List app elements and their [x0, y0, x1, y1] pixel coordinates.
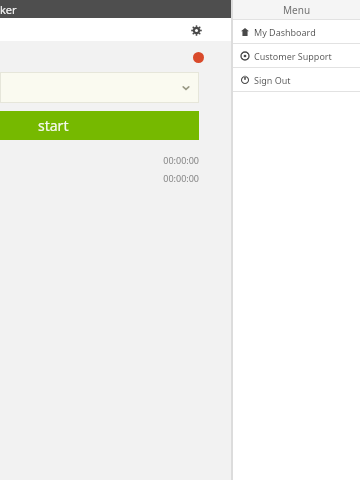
staticText: ker [0, 2, 17, 17]
staticText: Menu [283, 3, 311, 17]
button[interactable]: Settings [186, 20, 206, 40]
staticText: 00:00:00 [0, 154, 199, 166]
staticText: 00:00:00 [0, 172, 199, 184]
staticText: Customer Support [254, 50, 332, 62]
button[interactable] [0, 72, 199, 103]
button[interactable]: Sign Out [233, 68, 360, 91]
button[interactable]: Customer Support [233, 44, 360, 67]
staticText: My Dashboard [254, 26, 316, 38]
staticText: start [38, 116, 69, 135]
staticText: Sign Out [254, 74, 291, 86]
button[interactable]: My Dashboard [233, 20, 360, 43]
button[interactable]: start [0, 111, 199, 140]
button[interactable]: Record [193, 52, 204, 63]
